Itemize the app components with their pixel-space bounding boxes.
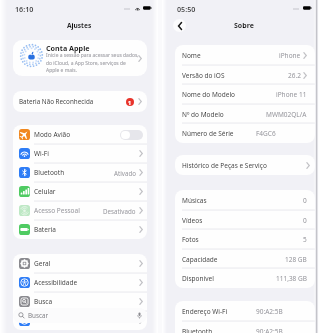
staticText: 26.2: [288, 71, 301, 80]
staticText: iPhone 11: [276, 90, 307, 99]
staticText: Busca: [34, 297, 53, 306]
staticText: Ajustes: [67, 21, 92, 30]
staticText: Nº do Modelo: [182, 110, 224, 119]
button[interactable]: Nº do Modelo: [175, 104, 315, 124]
staticText: Conta Apple: [46, 43, 90, 53]
button[interactable]: Wi-Fi: [13, 144, 147, 163]
button[interactable]: Acesso Pessoal: [13, 201, 147, 220]
button[interactable]: Bluetooth: [13, 163, 147, 182]
button[interactable]: Capacidade: [175, 249, 315, 269]
staticText: 0: [303, 196, 307, 205]
staticText: Nome do Modelo: [182, 90, 236, 99]
button[interactable]: Músicas: [175, 190, 315, 210]
button[interactable]: Busca: [13, 292, 147, 311]
staticText: Bluetooth: [34, 168, 65, 177]
staticText: 5: [303, 235, 307, 244]
button[interactable]: Privacidade: [13, 311, 147, 330]
staticText: Versão do iOS: [182, 71, 225, 80]
staticText: 128 GB: [285, 255, 307, 264]
button[interactable]: Nome: [175, 45, 315, 65]
staticText: Buscar: [28, 311, 49, 320]
button[interactable]: Voltar: [173, 19, 186, 32]
staticText: Número de Série: [182, 129, 234, 138]
button[interactable]: Endereço Wi-Fi: [175, 301, 315, 321]
button[interactable]: Bateria: [13, 220, 147, 239]
staticText: Celular: [34, 187, 56, 196]
staticText: 90:A2:5B: [256, 327, 283, 333]
button[interactable]: Vídeos: [175, 210, 315, 230]
staticText: Nome: [182, 51, 201, 60]
staticText: Ativado: [114, 169, 136, 177]
staticText: Disponível: [182, 274, 214, 283]
staticText: MWM02QL/A: [266, 110, 307, 119]
staticText: Vídeos: [182, 216, 203, 225]
button[interactable]: Bluetooth: [175, 321, 315, 333]
staticText: 0: [303, 216, 307, 225]
button[interactable]: Acessibilidade: [13, 273, 147, 292]
staticText: Geral: [34, 259, 51, 268]
staticText: Fotos: [182, 235, 199, 244]
staticText: 05:50: [177, 4, 196, 14]
button[interactable]: Nome do Modelo: [175, 84, 315, 104]
staticText: Acesso Pessoal: [34, 206, 80, 215]
button[interactable]: Geral: [13, 254, 147, 273]
button[interactable]: Buscar: [13, 308, 147, 323]
button[interactable]: Disponível: [175, 268, 315, 288]
staticText: Bateria Não Reconhecida: [19, 97, 94, 106]
staticText: Desativado: [103, 207, 136, 215]
staticText: Capacidade: [182, 255, 218, 264]
staticText: Bateria: [34, 225, 56, 234]
staticText: Inicie a sessão para acessar seus dados,…: [46, 52, 139, 73]
staticText: Modo Avião: [34, 130, 71, 139]
staticText: Músicas: [182, 196, 207, 205]
staticText: Bluetooth: [182, 327, 213, 333]
staticText: 16:10: [15, 4, 34, 14]
button[interactable]: Fotos: [175, 229, 315, 249]
staticText: Acessibilidade: [34, 278, 78, 287]
staticText: F4GC6: [256, 129, 276, 138]
button[interactable]: Modo Avião: [13, 125, 147, 144]
button[interactable]: Histórico de Peças e Serviço: [175, 155, 315, 175]
staticText: Sobre: [234, 21, 254, 31]
staticText: 1: [128, 99, 132, 106]
button[interactable]: Bateria Não Reconhecida: [13, 91, 147, 112]
staticText: 90:A2:5B: [256, 307, 283, 316]
button[interactable]: Conta Apple: [13, 40, 147, 76]
staticText: Privacidade: [34, 316, 70, 325]
staticText: Endereço Wi-Fi: [182, 307, 228, 316]
staticText: iPhone: [279, 51, 301, 60]
button[interactable]: Versão do iOS: [175, 65, 315, 85]
staticText: Histórico de Peças e Serviço: [182, 161, 267, 170]
button[interactable]: Número de Série: [175, 123, 315, 143]
button[interactable]: Celular: [13, 182, 147, 201]
staticText: Wi-Fi: [34, 149, 49, 158]
staticText: 111,38 GB: [276, 274, 307, 283]
